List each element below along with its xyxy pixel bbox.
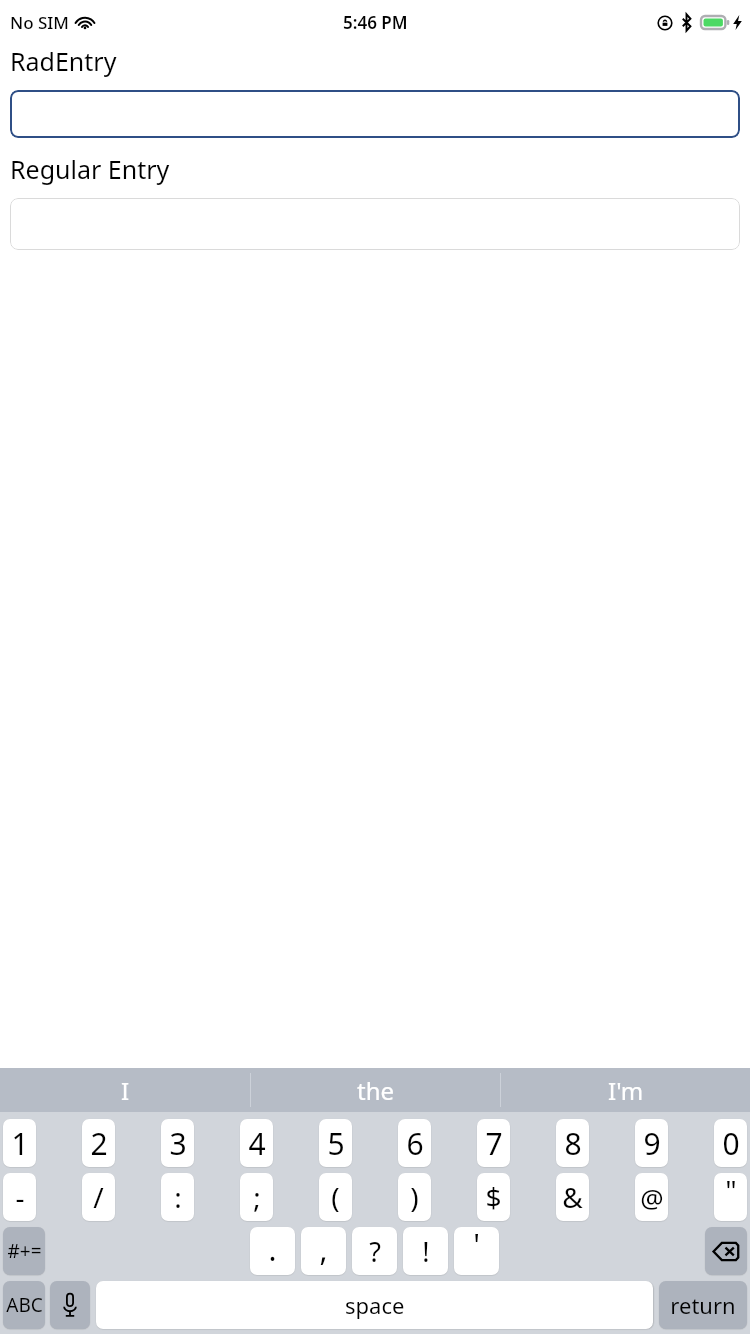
- staticText: RadEntry: [10, 44, 117, 78]
- staticText: No SIM: [10, 11, 69, 34]
- button[interactable]: .: [250, 1227, 295, 1275]
- staticText: 6: [406, 1123, 424, 1164]
- button[interactable]: ": [714, 1173, 747, 1221]
- button[interactable]: I'm: [501, 1068, 750, 1112]
- button[interactable]: :: [161, 1173, 194, 1221]
- button[interactable]: the: [251, 1068, 500, 1112]
- button[interactable]: @: [635, 1173, 668, 1221]
- button[interactable]: ABC: [3, 1281, 45, 1329]
- staticText: 5:46 PM: [343, 11, 408, 34]
- staticText: 5: [327, 1123, 345, 1164]
- staticText: 3: [169, 1123, 187, 1164]
- staticText: :: [174, 1178, 182, 1216]
- staticText: ': [473, 1227, 480, 1265]
- button[interactable]: 5: [319, 1119, 352, 1167]
- button[interactable]: return: [659, 1281, 747, 1329]
- staticText: ABC: [6, 1292, 43, 1318]
- button[interactable]: 7: [477, 1119, 510, 1167]
- button[interactable]: I: [0, 1068, 250, 1112]
- button[interactable]: 3: [161, 1119, 194, 1167]
- button[interactable]: Backspace: [705, 1227, 747, 1275]
- staticText: ): [410, 1178, 419, 1216]
- button[interactable]: 4: [240, 1119, 273, 1167]
- button[interactable]: space: [96, 1281, 653, 1329]
- staticText: space: [345, 1290, 405, 1320]
- button[interactable]: ): [398, 1173, 431, 1221]
- staticText: return: [670, 1290, 736, 1320]
- staticText: 2: [90, 1123, 108, 1164]
- staticText: 7: [485, 1123, 503, 1164]
- button[interactable]: ,: [301, 1227, 346, 1275]
- staticText: .: [268, 1229, 277, 1270]
- staticText: I'm: [608, 1074, 644, 1107]
- button[interactable]: 1: [3, 1119, 36, 1167]
- staticText: $: [485, 1178, 502, 1216]
- staticText: /: [93, 1178, 104, 1216]
- staticText: ?: [369, 1233, 381, 1270]
- staticText: -: [15, 1178, 25, 1216]
- button[interactable]: !: [403, 1227, 448, 1275]
- staticText: (: [331, 1178, 340, 1216]
- button[interactable]: 9: [635, 1119, 668, 1167]
- staticText: ;: [253, 1178, 261, 1216]
- button[interactable]: /: [82, 1173, 115, 1221]
- staticText: &: [562, 1178, 583, 1216]
- button[interactable]: 8: [556, 1119, 589, 1167]
- staticText: ,: [319, 1229, 328, 1270]
- staticText: 9: [643, 1123, 661, 1164]
- button[interactable]: [10, 198, 740, 250]
- staticText: #+=: [7, 1238, 42, 1264]
- staticText: ": [725, 1173, 737, 1209]
- staticText: 0: [722, 1123, 740, 1164]
- staticText: Regular Entry: [10, 152, 170, 186]
- button[interactable]: 2: [82, 1119, 115, 1167]
- button[interactable]: ': [454, 1227, 499, 1275]
- staticText: 8: [564, 1123, 582, 1164]
- button[interactable]: $: [477, 1173, 510, 1221]
- button[interactable]: 6: [398, 1119, 431, 1167]
- button[interactable]: Dictate: [50, 1281, 90, 1329]
- staticText: the: [357, 1074, 395, 1107]
- button[interactable]: #+=: [3, 1227, 45, 1275]
- button[interactable]: ?: [352, 1227, 397, 1275]
- button[interactable]: 0: [714, 1119, 747, 1167]
- staticText: 4: [248, 1123, 266, 1164]
- staticText: !: [422, 1233, 430, 1270]
- button[interactable]: -: [3, 1173, 36, 1221]
- button[interactable]: &: [556, 1173, 589, 1221]
- button[interactable]: (: [319, 1173, 352, 1221]
- button[interactable]: ;: [240, 1173, 273, 1221]
- staticText: I: [121, 1074, 130, 1107]
- staticText: @: [640, 1180, 664, 1215]
- button[interactable]: [10, 90, 740, 138]
- staticText: 1: [11, 1123, 29, 1164]
